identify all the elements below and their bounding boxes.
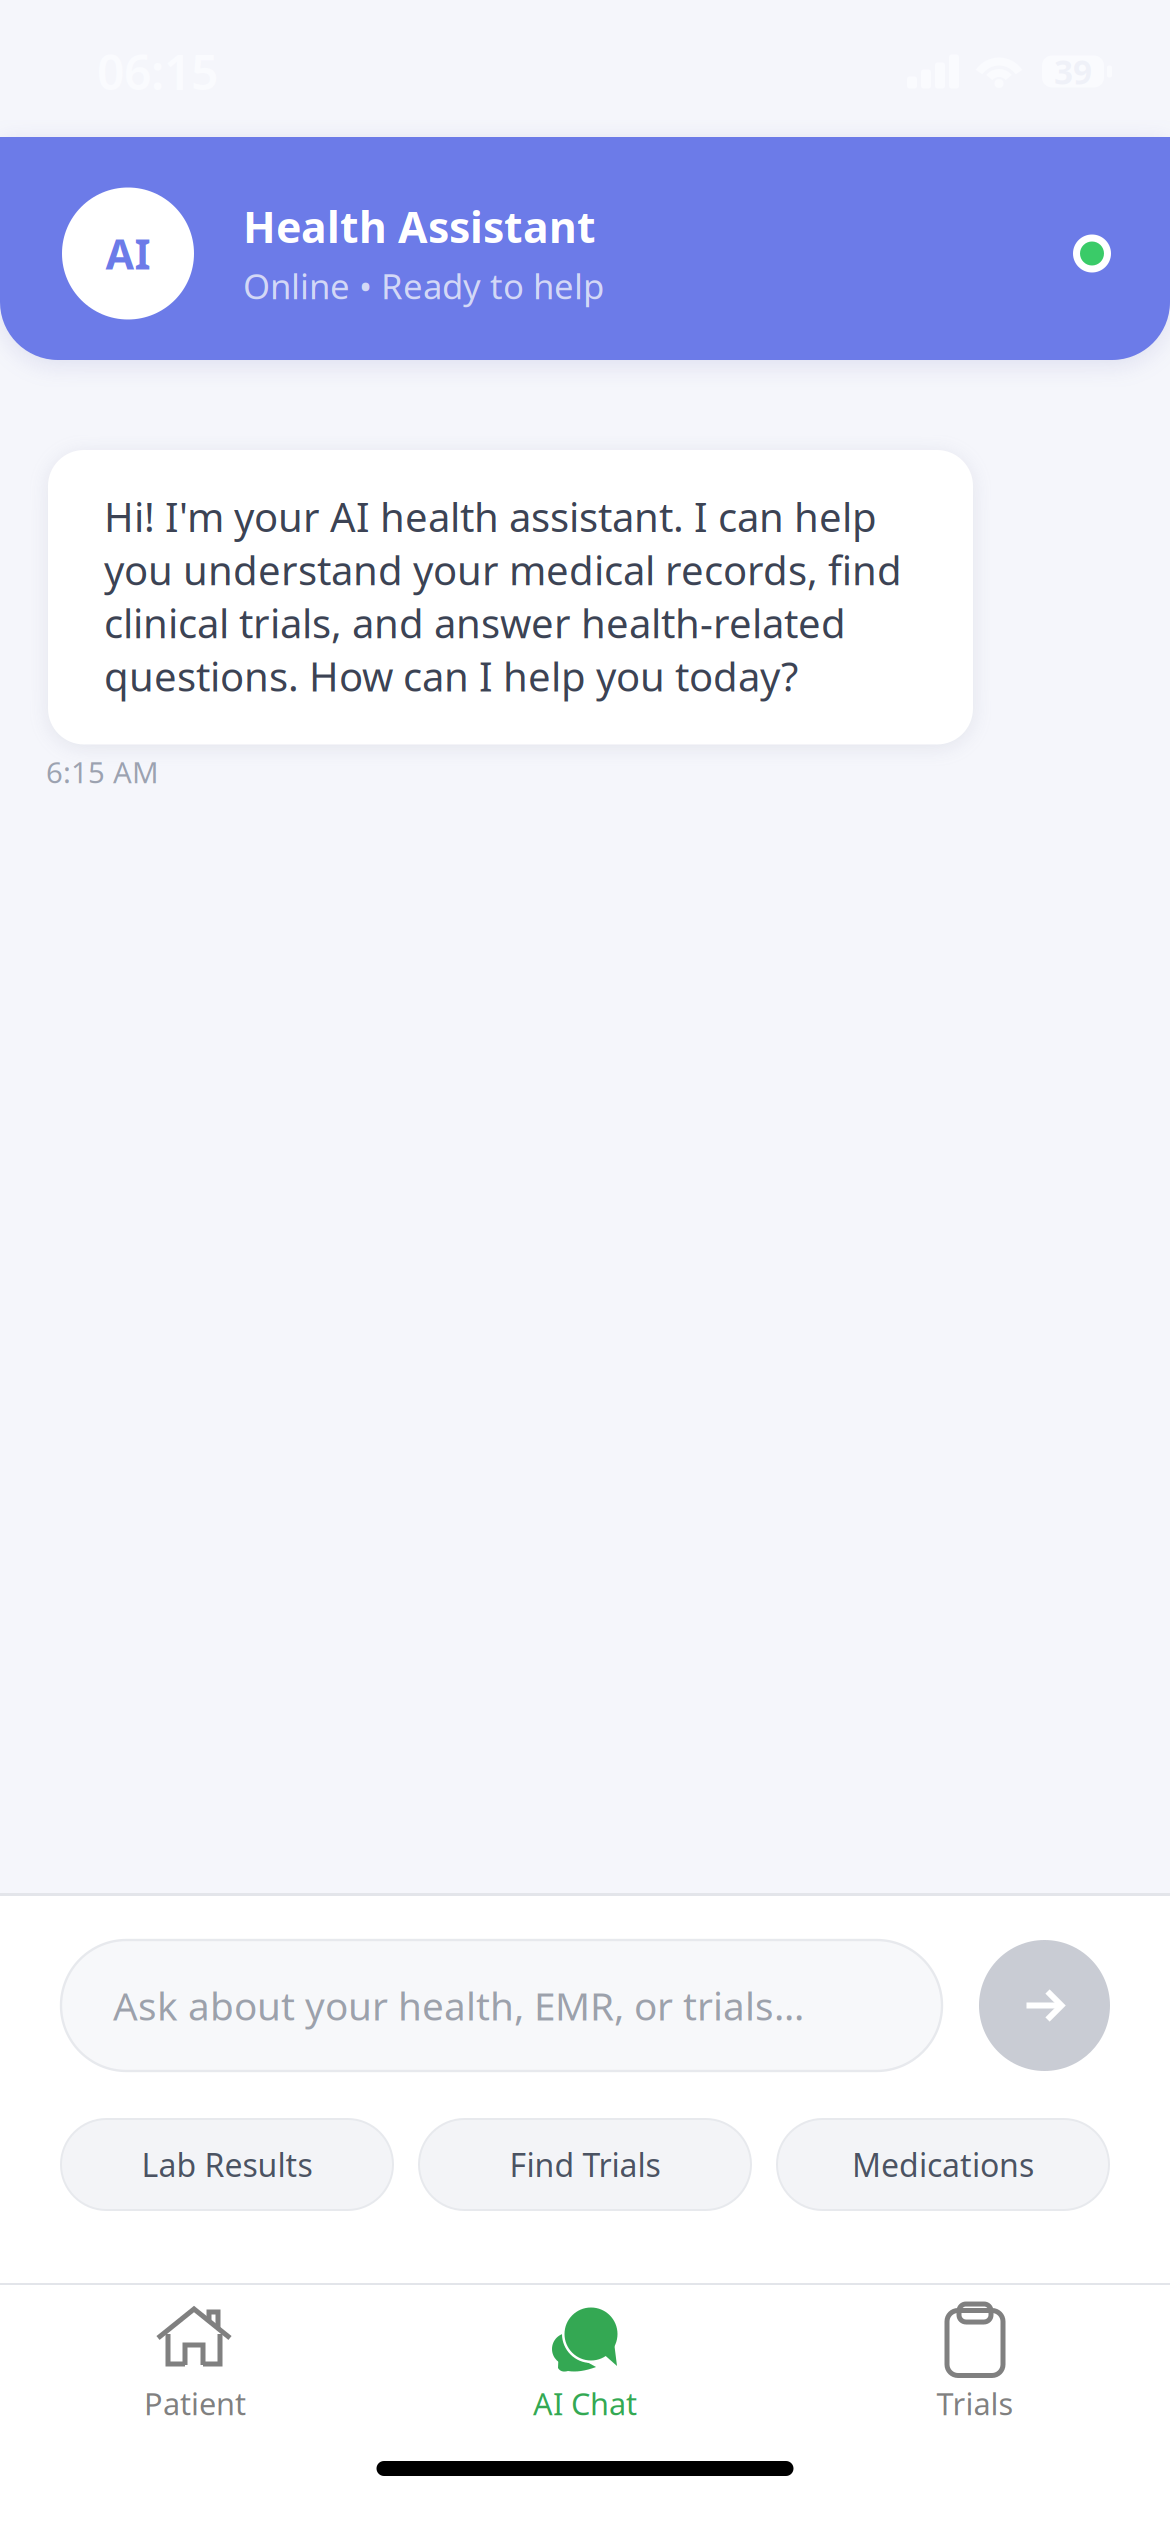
button[interactable]: Ask about your health, EMR, or trials...	[61, 1940, 942, 2071]
staticText: Find Trials	[509, 2143, 660, 2186]
button[interactable]: Lab Results	[61, 2119, 393, 2210]
staticText: Hi! I'm your AI health assistant. I can …	[104, 490, 902, 702]
staticText: Online • Ready to help	[243, 263, 604, 309]
button[interactable]: Find Trials	[419, 2119, 751, 2210]
button[interactable]: Medications	[777, 2119, 1109, 2210]
staticText: Ask about your health, EMR, or trials...	[113, 1980, 804, 2031]
button[interactable]: Send	[979, 1940, 1110, 2071]
staticText: 39	[1054, 49, 1092, 94]
button[interactable]: Patient	[0, 2285, 390, 2424]
staticText: AI Chat	[533, 2383, 637, 2424]
staticText: 6:15 AM	[46, 752, 159, 791]
staticText: Lab Results	[141, 2143, 312, 2186]
staticText: AI	[105, 226, 150, 281]
button[interactable]: AI Chat	[390, 2285, 780, 2424]
staticText: Trials	[936, 2383, 1013, 2424]
staticText: Patient	[144, 2383, 246, 2424]
staticText: Health Assistant	[243, 198, 596, 255]
button[interactable]: Trials	[780, 2285, 1170, 2424]
staticText: Medications	[852, 2143, 1034, 2186]
